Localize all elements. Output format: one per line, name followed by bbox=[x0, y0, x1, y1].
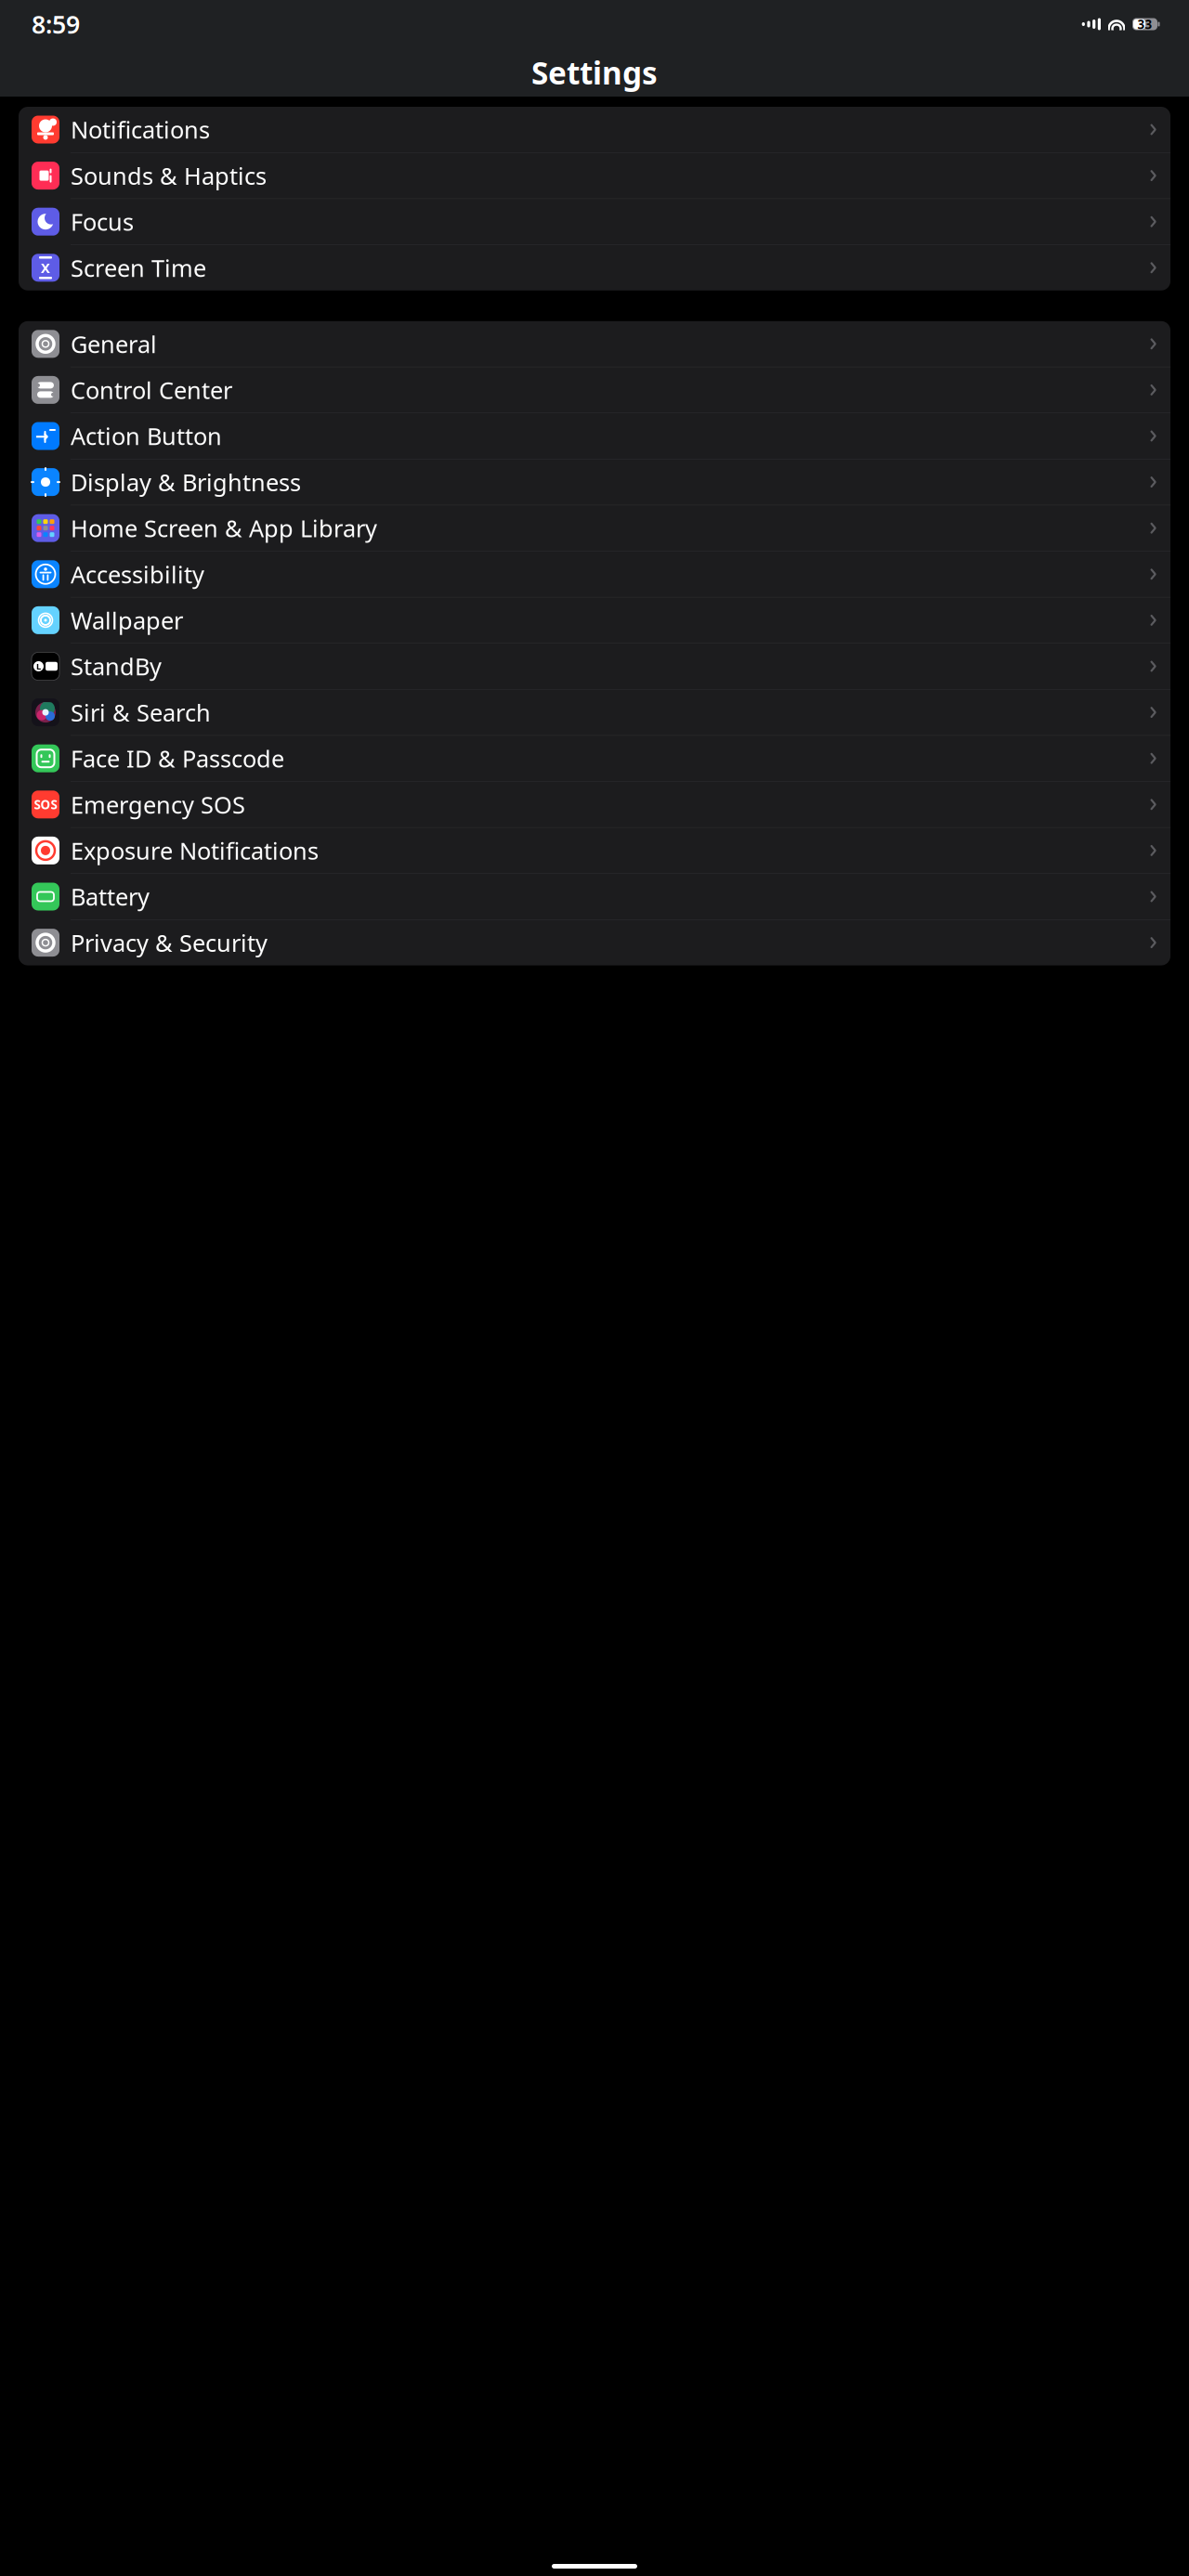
staticText: Home Screen & App Library bbox=[71, 513, 377, 544]
staticText: Control Center bbox=[71, 374, 232, 406]
staticText: Action Button bbox=[71, 420, 222, 452]
staticText: Focus bbox=[71, 206, 134, 237]
staticText: Accessibility bbox=[71, 559, 204, 590]
staticText: X bbox=[41, 259, 50, 277]
button[interactable]: General bbox=[19, 321, 1170, 367]
staticText: Privacy & Security bbox=[71, 927, 268, 958]
button[interactable]: Control Center bbox=[19, 367, 1170, 413]
button[interactable]: Siri & Search bbox=[19, 690, 1170, 736]
button[interactable]: Display & Brightness bbox=[19, 459, 1170, 505]
staticText: Notifications bbox=[71, 114, 210, 145]
staticText: Wallpaper bbox=[71, 605, 183, 636]
staticText: Exposure Notifications bbox=[71, 835, 319, 866]
staticText: StandBy bbox=[71, 651, 162, 682]
staticText: Display & Brightness bbox=[71, 466, 301, 498]
button[interactable]: Focus bbox=[19, 199, 1170, 245]
staticText: 8:59 bbox=[32, 8, 80, 41]
button[interactable]: L bbox=[19, 644, 1170, 690]
staticText: Screen Time bbox=[71, 252, 206, 283]
button[interactable]: → bbox=[19, 413, 1170, 459]
button[interactable]: Exposure Notifications bbox=[19, 828, 1170, 874]
staticText: SOS bbox=[34, 796, 57, 813]
button[interactable]: Sounds & Haptics bbox=[19, 153, 1170, 199]
button[interactable]: Battery bbox=[19, 874, 1170, 920]
staticText: Face ID & Passcode bbox=[71, 743, 284, 774]
button[interactable]: Wallpaper bbox=[19, 597, 1170, 644]
button[interactable]: X bbox=[19, 245, 1170, 290]
staticText: Emergency SOS bbox=[71, 789, 245, 820]
staticText: L bbox=[36, 661, 41, 672]
staticText: 33 bbox=[1137, 16, 1152, 32]
staticText: → bbox=[35, 427, 49, 445]
button[interactable]: SOS bbox=[19, 782, 1170, 828]
button[interactable]: Privacy & Security bbox=[19, 920, 1170, 965]
button[interactable]: Home Screen & App Library bbox=[19, 505, 1170, 551]
button[interactable]: Face ID & Passcode bbox=[19, 736, 1170, 782]
staticText: Sounds & Haptics bbox=[71, 160, 267, 191]
button[interactable]: Notifications bbox=[19, 107, 1170, 153]
staticText: Siri & Search bbox=[71, 697, 211, 728]
button[interactable]: Accessibility bbox=[19, 551, 1170, 597]
staticText: Battery bbox=[71, 881, 150, 912]
staticText: General bbox=[71, 328, 157, 359]
staticText: Settings bbox=[531, 52, 658, 93]
